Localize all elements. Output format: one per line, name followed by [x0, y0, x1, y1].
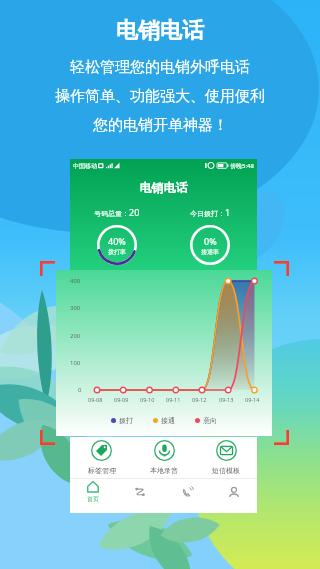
- staticText: 20: [129, 206, 140, 218]
- staticText: 中国移动: [73, 162, 97, 170]
- staticText: 拨打: [119, 416, 133, 425]
- staticText: 号码总量：: [94, 209, 129, 218]
- staticText: 09-09: [114, 396, 129, 403]
- staticText: 轻松管理您的电销外呼电话: [70, 58, 250, 77]
- button[interactable]: 我的: [210, 479, 257, 506]
- staticText: 0: [78, 386, 82, 394]
- staticText: 09-11: [166, 396, 181, 403]
- button[interactable]: 拨打: [111, 416, 133, 425]
- staticText: 09-10: [140, 396, 155, 403]
- staticText: 短信模板: [212, 466, 240, 475]
- staticText: 40%: [108, 235, 126, 247]
- button[interactable]: 通话: [163, 479, 210, 506]
- button[interactable]: 短信模板: [195, 440, 257, 475]
- button[interactable]: 首页: [70, 479, 116, 506]
- staticText: 1: [225, 206, 231, 218]
- staticText: 电销电话: [70, 180, 257, 195]
- button[interactable]: 标签管理: [70, 440, 133, 475]
- staticText: 接通: [161, 416, 175, 425]
- button[interactable]: 任务: [116, 479, 163, 506]
- staticText: 09-08: [88, 396, 103, 403]
- staticText: 您的电销开单神器！: [93, 116, 228, 135]
- staticText: 09-13: [219, 396, 234, 403]
- button[interactable]: 接通: [153, 416, 175, 425]
- staticText: 今日拨打：: [190, 209, 225, 218]
- button[interactable]: 本地录音: [133, 440, 195, 475]
- staticText: 400: [70, 277, 81, 285]
- staticText: 0%: [204, 235, 217, 247]
- staticText: 100: [70, 359, 81, 367]
- staticText: 拨打率: [108, 248, 126, 256]
- staticText: 接通率: [201, 248, 219, 256]
- staticText: 标签管理: [88, 466, 116, 475]
- staticText: 傍晚5:48: [230, 162, 254, 170]
- staticText: 首页: [87, 495, 99, 503]
- staticText: 09-14: [245, 396, 260, 403]
- staticText: 09-12: [192, 396, 207, 403]
- staticText: 意向: [203, 416, 217, 425]
- staticText: 电销电话: [116, 17, 204, 45]
- staticText: 操作简单、功能强大、使用便利: [55, 87, 265, 106]
- staticText: 200: [70, 332, 81, 340]
- staticText: 300: [70, 304, 81, 312]
- staticText: 本地录音: [150, 466, 178, 475]
- button[interactable]: 意向: [195, 416, 217, 425]
